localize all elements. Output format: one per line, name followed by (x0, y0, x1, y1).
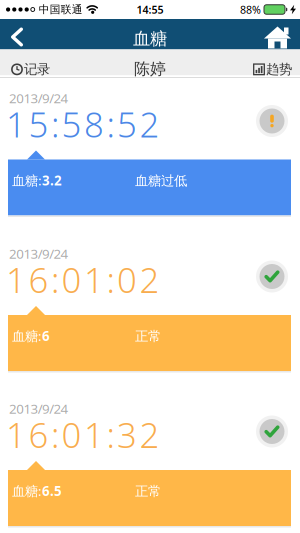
staticText: 6 (28, 256, 48, 303)
button[interactable]: 记录 (0, 49, 50, 78)
staticText: 88% (240, 2, 261, 17)
staticText: 6.5 (42, 482, 62, 500)
staticText: 血糖: (12, 482, 42, 500)
staticText: : (106, 100, 114, 148)
staticText: 1 (6, 256, 26, 303)
staticText: 5 (117, 100, 137, 148)
staticText: 记录 (24, 61, 50, 78)
staticText: 0 (61, 411, 81, 458)
staticText: 血糖 (133, 28, 167, 49)
staticText: 8 (84, 100, 104, 148)
staticText: : (106, 411, 114, 458)
staticText: 陈婷 (134, 59, 166, 79)
staticText: 2013/9/24 (9, 400, 69, 417)
staticText: 血糖: (12, 171, 42, 189)
staticText: 5 (28, 100, 48, 148)
staticText: 2013/9/24 (9, 245, 69, 262)
staticText: 1 (84, 256, 104, 303)
staticText: 6 (28, 411, 48, 458)
button[interactable]: Home (258, 19, 300, 48)
staticText: 6 (42, 327, 50, 345)
staticText: 中国联通 (39, 3, 83, 16)
button[interactable]: 趋势 (253, 49, 300, 78)
staticText: 2 (139, 100, 159, 148)
staticText: : (106, 256, 114, 303)
staticText: 正常 (135, 483, 161, 499)
staticText: 3 (117, 411, 137, 458)
staticText: : (51, 411, 59, 458)
button[interactable]: Back (0, 19, 31, 46)
staticText: : (51, 256, 59, 303)
staticText: 2 (139, 256, 159, 303)
staticText: 2 (139, 411, 159, 458)
staticText: 5 (61, 100, 81, 148)
staticText: 1 (6, 411, 26, 458)
staticText: 1 (6, 100, 26, 148)
staticText: 正常 (135, 328, 161, 344)
staticText: 3.2 (42, 171, 62, 189)
staticText: 血糖过低 (135, 172, 187, 189)
staticText: 0 (61, 256, 81, 303)
staticText: 14:55 (136, 2, 163, 17)
staticText: 2013/9/24 (9, 89, 69, 107)
staticText: : (51, 100, 59, 148)
staticText: 趋势 (266, 61, 292, 78)
staticText: 1 (84, 411, 104, 458)
staticText: 血糖: (12, 327, 42, 345)
staticText: 0 (117, 256, 137, 303)
